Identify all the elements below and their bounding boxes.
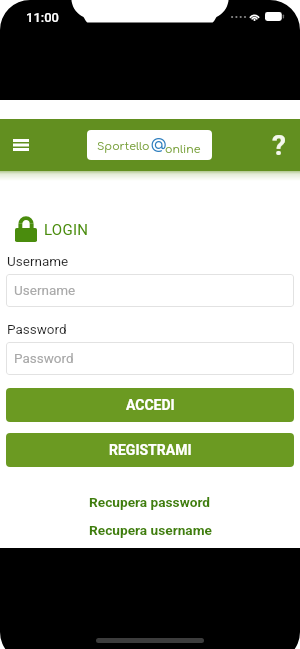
staticText: Sportello <box>97 140 150 152</box>
staticText: @ <box>151 137 167 153</box>
staticText: Username <box>7 253 69 269</box>
button[interactable]: Sportello <box>87 130 212 160</box>
button[interactable]: Recupera password <box>0 492 300 512</box>
button[interactable]: ACCEDI <box>6 388 294 422</box>
button[interactable]: Password <box>6 342 294 375</box>
staticText: online <box>165 143 201 155</box>
staticText: REGISTRAMI <box>109 442 192 458</box>
staticText: Password <box>7 321 67 337</box>
staticText: ACCEDI <box>126 397 175 413</box>
button[interactable]: Menu <box>5 129 37 161</box>
button[interactable]: REGISTRAMI <box>6 433 294 467</box>
button[interactable]: Help <box>263 129 295 161</box>
staticText: Username <box>14 282 76 298</box>
staticText: LOGIN <box>44 221 89 239</box>
staticText: 11:00 <box>26 10 59 25</box>
button[interactable]: Recupera username <box>0 520 300 540</box>
staticText: ? <box>272 129 286 161</box>
staticText: Recupera password <box>89 494 211 510</box>
button[interactable]: Username <box>6 274 294 307</box>
staticText: Password <box>14 350 74 366</box>
staticText: Recupera username <box>89 522 212 538</box>
